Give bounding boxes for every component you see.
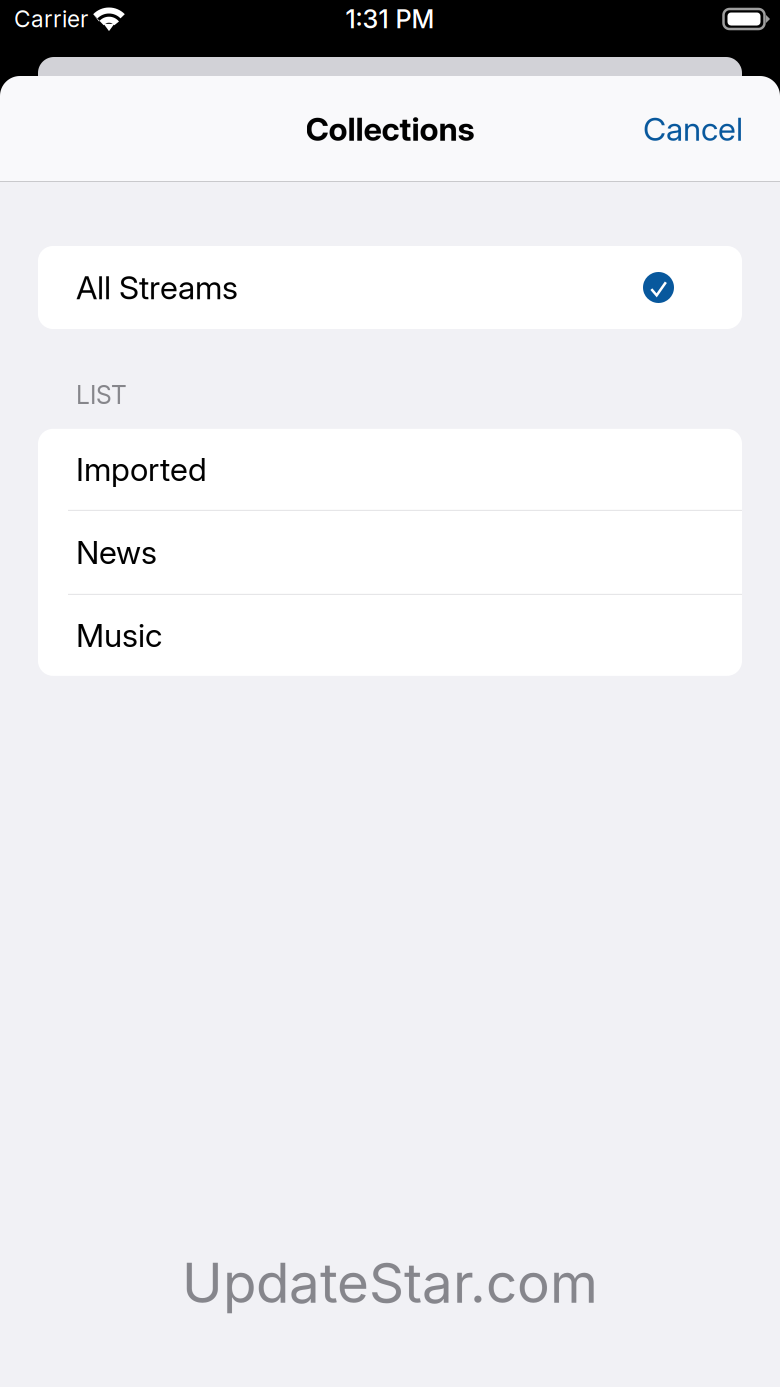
staticText: Collections — [305, 110, 474, 148]
staticText: News — [76, 533, 157, 572]
staticText: 1:31 PM — [345, 4, 434, 34]
button[interactable]: All Streams — [38, 246, 742, 329]
button[interactable]: Music — [38, 595, 742, 676]
button[interactable]: News — [38, 511, 742, 594]
staticText: UpdateStar.com — [182, 1250, 598, 1316]
staticText: Imported — [76, 450, 207, 489]
staticText: Cancel — [643, 110, 743, 148]
staticText: Music — [76, 616, 162, 655]
staticText: Carrier — [14, 5, 88, 33]
staticText: LIST — [76, 380, 127, 410]
staticText: All Streams — [76, 268, 238, 307]
button[interactable]: Cancel — [626, 94, 760, 164]
button[interactable]: Imported — [38, 429, 742, 510]
